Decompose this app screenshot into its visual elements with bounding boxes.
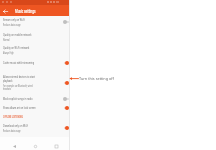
button[interactable]: Back: [1, 7, 9, 15]
button[interactable]: Stream only on Wi-Fi: [0, 15, 69, 28]
staticText: Quality on Wi-Fi network: [3, 45, 30, 50]
button[interactable]: Quality on Wi-Fi network: [0, 43, 69, 56]
staticText: Quality on mobile network: [3, 32, 31, 37]
button[interactable]: Show album art on lock screen: [0, 103, 69, 112]
button[interactable]: Allow external devices to start playback: [0, 69, 69, 95]
staticText: Cache music while streaming: [3, 60, 34, 65]
button[interactable]: Back: [9, 141, 19, 150]
staticText: Reduces data usage: [3, 128, 21, 132]
staticText: Turn this setting off: [79, 76, 114, 81]
staticText: Normal: [3, 37, 10, 41]
button[interactable]: Download only on Wi-Fi: [0, 121, 69, 134]
button[interactable]: Home: [30, 141, 40, 150]
button[interactable]: Toggle: [63, 19, 69, 24]
button[interactable]: Toggle: [63, 60, 69, 65]
staticText: Music settings: [15, 8, 36, 14]
button[interactable]: Toggle: [63, 105, 69, 110]
button[interactable]: Quality on mobile network: [0, 29, 69, 43]
staticText: Block explicit songs in radio: [3, 96, 33, 101]
staticText: Reduces data usage: [3, 22, 21, 26]
staticText: Download only on Wi-Fi: [3, 123, 29, 128]
staticText: Show album art on lock screen: [3, 105, 36, 110]
button[interactable]: Toggle: [63, 125, 69, 130]
staticText: Always High: [3, 50, 14, 54]
button[interactable]: Toggle: [63, 96, 69, 101]
button[interactable]: Block explicit songs in radio: [0, 94, 69, 103]
other: Callout arrow: [69, 76, 79, 81]
button[interactable]: Recent apps: [51, 141, 61, 150]
staticText: OFFLINE LISTENING: [3, 114, 23, 119]
button[interactable]: Toggle: [63, 80, 69, 85]
staticText: Stream only on Wi-Fi: [3, 17, 25, 22]
staticText: For example: car Bluetooth, wired headse…: [3, 83, 33, 91]
button[interactable]: Cache music while streaming: [0, 56, 69, 69]
staticText: Allow external devices to start playback: [3, 74, 35, 83]
